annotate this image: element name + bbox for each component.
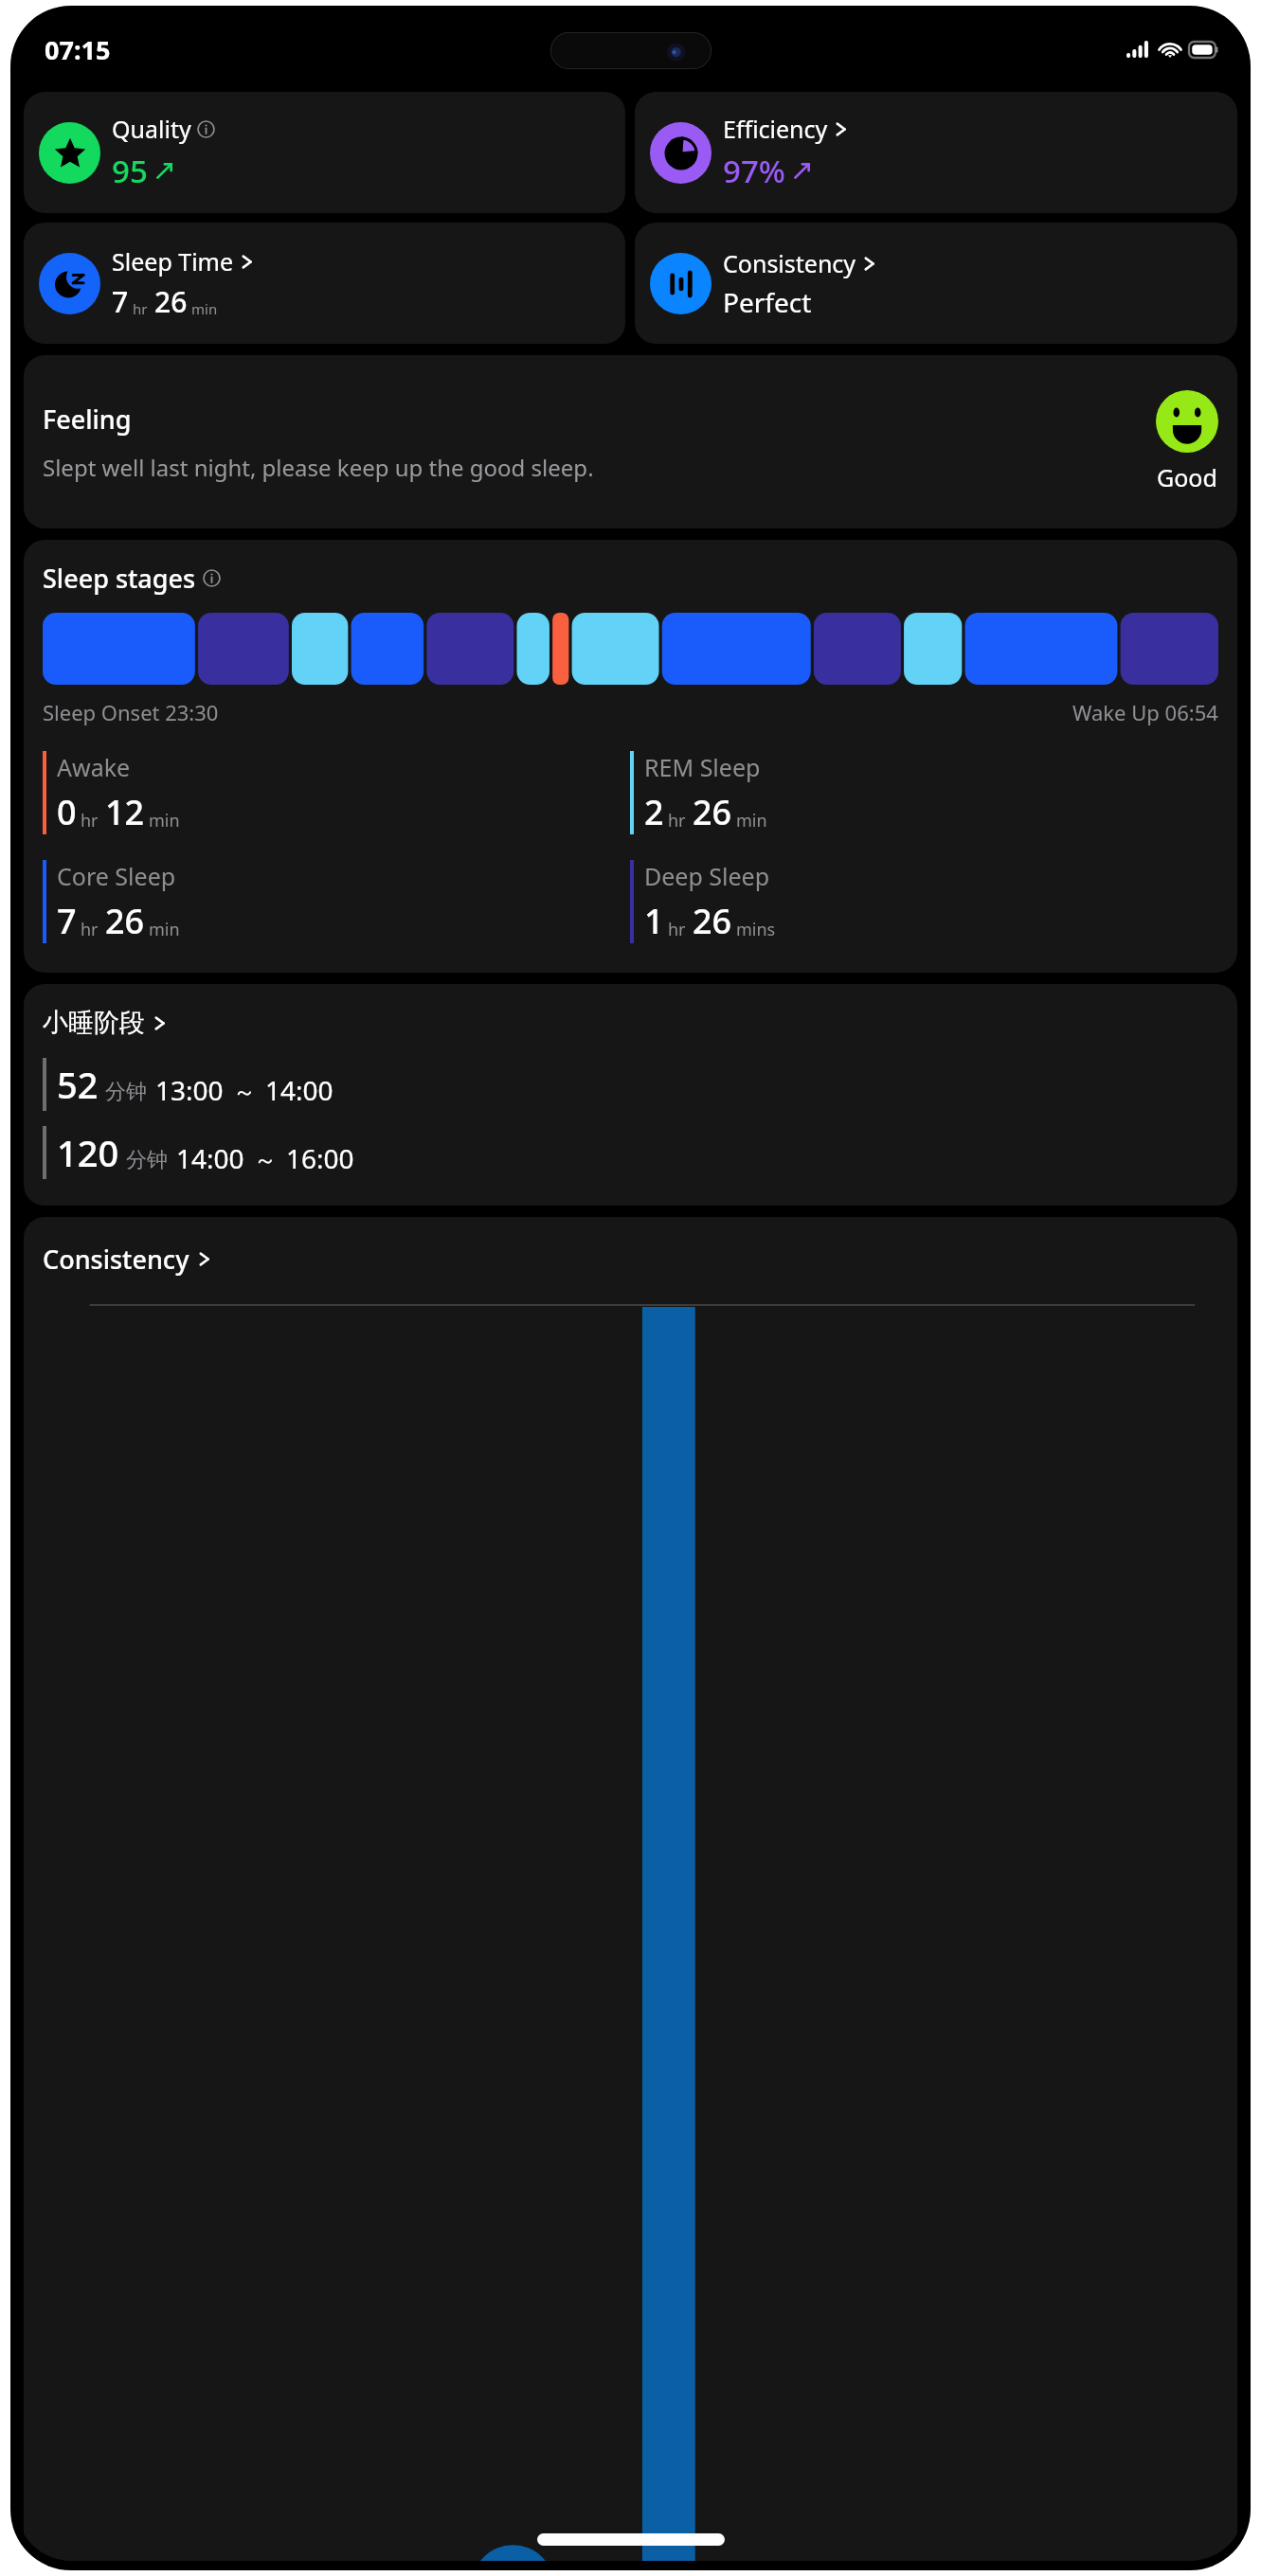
staticText: 07:15 [45,32,111,67]
staticText: 7 [57,898,77,944]
staticText: hr [668,809,686,832]
staticText: 1 [644,898,664,944]
other: Efficiency [650,122,712,184]
staticText: Perfect [723,284,812,320]
staticText: Slept well last night, please keep up th… [43,452,1068,483]
staticText: hr [81,809,99,832]
staticText: Deep Sleep [644,860,770,892]
staticText: Wake Up 06:54 [1072,698,1218,726]
staticText: 26 [105,898,145,944]
staticText: Efficiency [723,113,828,145]
staticText: min [149,918,180,941]
staticText: 26 [693,789,732,835]
button[interactable]: Quality [24,92,625,213]
staticText: Feeling [43,402,132,437]
staticText: 7 [112,282,129,321]
staticText: Consistency [723,247,856,279]
staticText: min [149,809,180,832]
staticText: 2 [644,789,664,835]
staticText: 分钟 [126,1147,168,1173]
staticText: 95 [112,150,148,192]
staticText: Core Sleep [57,860,176,892]
staticText: Sleep Time [112,245,234,277]
button[interactable]: Feeling [24,355,1237,528]
staticText: Good [1157,461,1217,493]
staticText: Quality [112,113,191,145]
staticText: 12 [105,789,145,835]
staticText: 26 [154,282,188,321]
button[interactable]: Efficiency [635,92,1237,213]
staticText: 小睡阶段 [43,1007,145,1039]
staticText: ～ [233,1078,256,1106]
staticText: 26 [693,898,732,944]
staticText: Sleep Onset 23:30 [43,698,219,726]
button[interactable]: 小睡阶段 [24,984,1237,1206]
staticText: 16:00 [286,1140,354,1176]
staticText: 分钟 [105,1079,147,1105]
staticText: 14:00 [176,1140,244,1176]
staticText: ～ [254,1146,277,1174]
staticText: 0 [57,789,77,835]
staticText: min [191,299,218,318]
other: Consistency [650,253,712,314]
staticText: 13:00 [155,1072,224,1108]
button[interactable]: Sleep stages [24,540,1237,973]
staticText: 14:00 [265,1072,333,1108]
staticText: REM Sleep [644,751,761,783]
staticText: min [736,809,767,832]
staticText: Consistency [43,1242,189,1277]
button[interactable]: Sleep Time [24,223,625,344]
staticText: hr [81,918,99,941]
staticText: 120 [57,1128,119,1177]
staticText: Awake [57,751,131,783]
other: Sleep Time [39,253,100,314]
button[interactable]: Consistency [24,1217,1237,2561]
button[interactable]: Consistency [635,223,1237,344]
staticText: hr [668,918,686,941]
other: Quality [39,122,100,184]
staticText: 52 [57,1060,99,1109]
staticText: 97% [723,150,785,192]
staticText: mins [736,918,776,941]
staticText: hr [133,299,148,318]
staticText: Sleep stages [43,561,196,596]
